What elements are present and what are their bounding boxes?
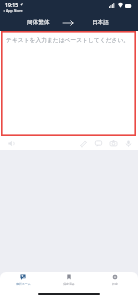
staticText: 設定 — [112, 282, 118, 286]
staticText: 簡体繁体 — [27, 19, 50, 26]
staticText: 翻訳ホーム — [16, 282, 31, 286]
staticText: テキストを入力またはペーストしてください。 — [6, 36, 130, 43]
staticText: App Store — [6, 8, 23, 13]
button[interactable]: Handwriting — [78, 138, 89, 149]
button[interactable]: 設定 — [92, 272, 138, 290]
button[interactable]: 簡体繁体 — [0, 17, 56, 31]
button[interactable]: Camera — [108, 138, 119, 149]
button[interactable]: Listen — [6, 138, 17, 149]
staticText: 19:15 — [5, 1, 19, 8]
button[interactable]: 翻訳ホーム — [0, 272, 46, 290]
staticText: 保存済み — [63, 282, 75, 286]
button[interactable]: Conversation — [93, 138, 104, 149]
button[interactable]: Microphone — [123, 138, 134, 149]
staticText: 日本語 — [92, 19, 109, 26]
button[interactable]: Swap languages — [56, 17, 80, 31]
button[interactable]: 日本語 — [80, 17, 138, 31]
button[interactable]: 保存済み — [46, 272, 92, 290]
